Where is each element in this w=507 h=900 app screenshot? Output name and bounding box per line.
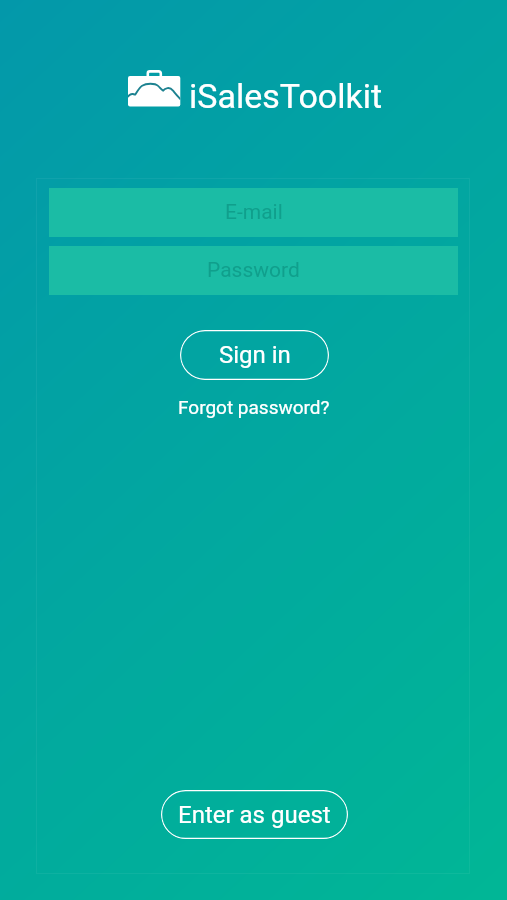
button[interactable]: Password	[49, 246, 458, 295]
staticText: Enter as guest	[178, 801, 331, 829]
staticText: E-mail	[225, 200, 283, 225]
other: iSalesToolkit logo	[128, 71, 181, 107]
staticText: iSalesToolkit	[189, 76, 383, 116]
button[interactable]: Forgot password?	[172, 392, 336, 422]
button[interactable]: Enter as guest	[161, 790, 348, 839]
button[interactable]: Sign in	[180, 330, 329, 380]
staticText: Password	[207, 258, 300, 283]
staticText: Sign in	[219, 341, 291, 369]
